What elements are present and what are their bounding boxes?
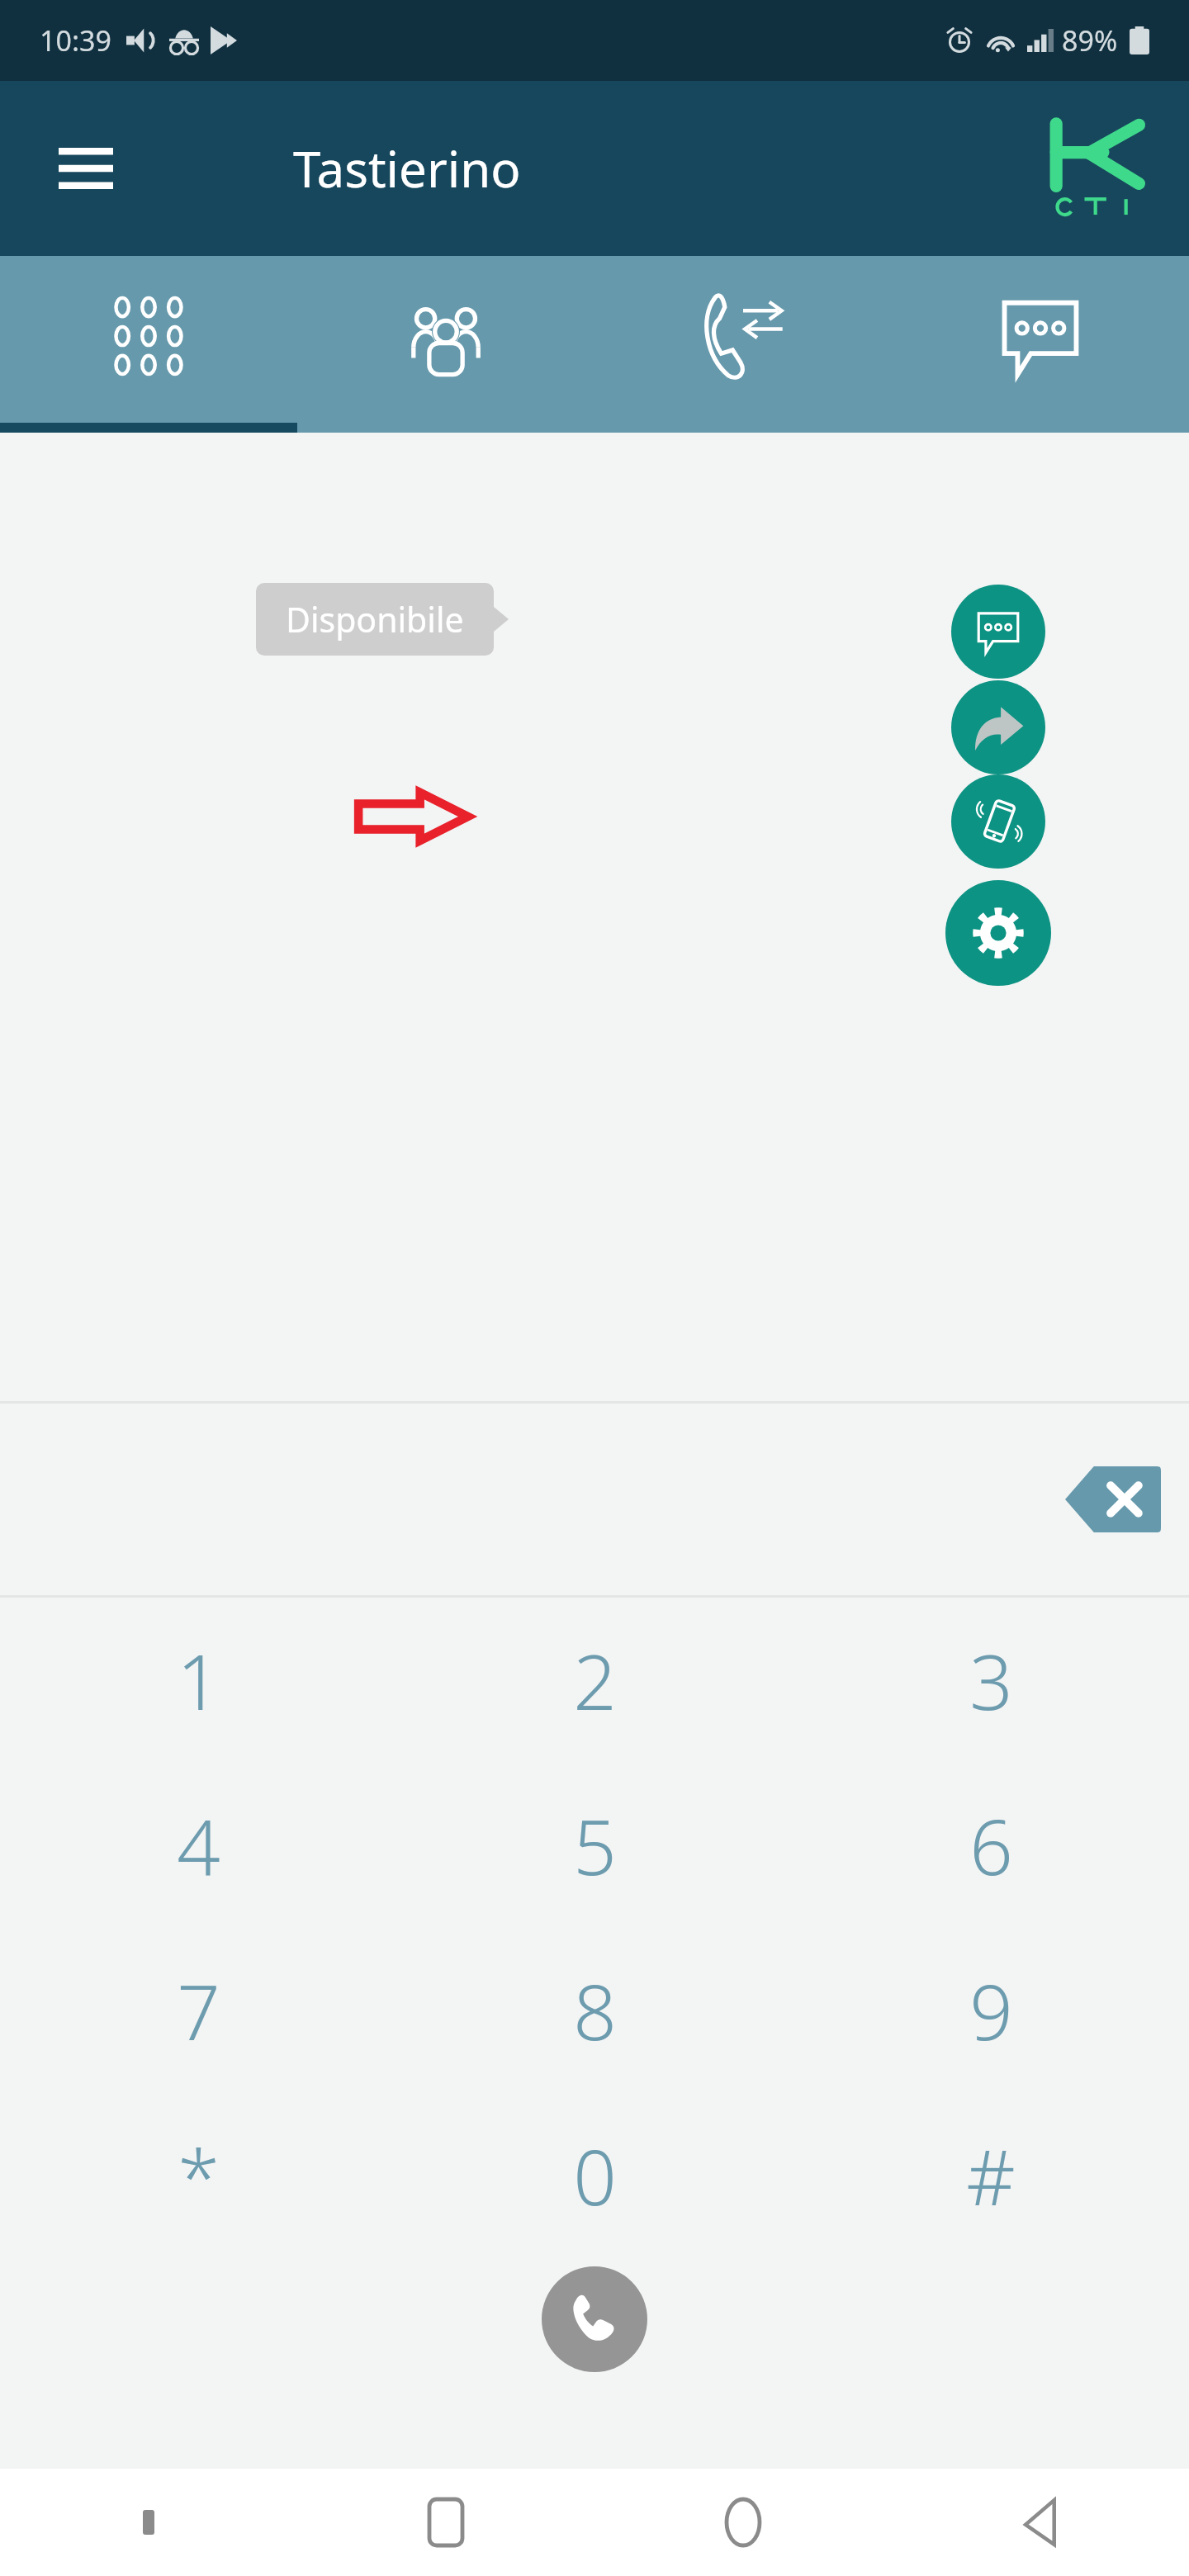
button[interactable]: Cancella (1055, 1458, 1171, 1541)
button[interactable]: Contatti (297, 256, 594, 433)
staticText: 89% (1062, 21, 1118, 59)
staticText: Tastierino (293, 135, 521, 202)
button[interactable]: Indietro (892, 2469, 1189, 2576)
button[interactable]: Messaggi (892, 256, 1189, 433)
button[interactable]: 4 (0, 1763, 396, 1928)
staticText: 1 (177, 1629, 220, 1732)
button[interactable]: 6 (793, 1763, 1189, 1928)
staticText: 4 (177, 1794, 220, 1897)
button[interactable]: Menu (35, 117, 137, 220)
button[interactable]: KCTI (1016, 94, 1177, 243)
staticText: 0 (573, 2124, 617, 2228)
button[interactable]: Trasferisci (951, 680, 1045, 774)
button[interactable]: Impostazioni (945, 880, 1051, 986)
staticText: 5 (573, 1794, 617, 1897)
staticText: 10:39 (40, 21, 111, 59)
staticText: 3 (969, 1629, 1013, 1732)
button[interactable]: Tastierino (0, 256, 297, 433)
button[interactable]: 8 (396, 1928, 793, 2093)
button[interactable]: App recenti (297, 2469, 594, 2576)
staticText: 8 (573, 1959, 617, 2062)
staticText: 9 (969, 1959, 1013, 2062)
staticText: 6 (969, 1794, 1013, 1897)
staticText: 2 (573, 1629, 617, 1732)
button[interactable]: 7 (0, 1928, 396, 2093)
button[interactable]: Disponibile (256, 583, 509, 656)
button[interactable]: # (793, 2093, 1189, 2258)
button[interactable]: 2 (396, 1598, 793, 1763)
staticText: 7 (177, 1959, 220, 2062)
button[interactable]: 3 (793, 1598, 1189, 1763)
button[interactable]: Squilla (951, 774, 1045, 869)
staticText: * (178, 2124, 220, 2228)
button[interactable]: 9 (793, 1928, 1189, 2093)
staticText: Disponibile (286, 596, 464, 642)
button[interactable]: 0 (396, 2093, 793, 2258)
button[interactable]: 5 (396, 1763, 793, 1928)
button[interactable]: Tastiera (0, 2469, 297, 2576)
button[interactable]: * (0, 2093, 396, 2258)
button[interactable]: Chiama (542, 2266, 647, 2372)
staticText: # (966, 2124, 1016, 2228)
button[interactable]: Home (594, 2469, 892, 2576)
button[interactable]: Chiamate (594, 256, 892, 433)
button[interactable]: Messaggi (951, 585, 1045, 679)
button[interactable]: 1 (0, 1598, 396, 1763)
